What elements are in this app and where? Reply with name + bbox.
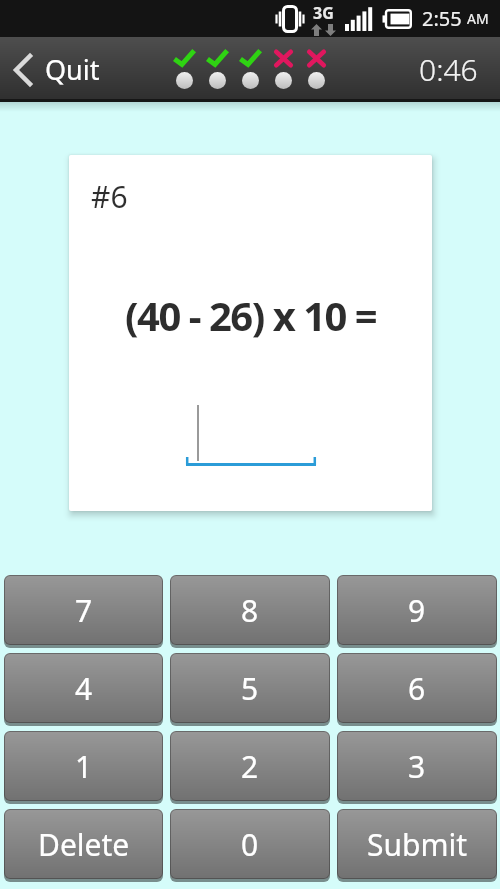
button[interactable]: Delete — [4, 809, 163, 879]
button[interactable]: 8 — [170, 575, 330, 645]
button[interactable]: Submit — [337, 809, 497, 879]
staticText: Quit — [45, 51, 100, 88]
button[interactable]: Quit — [14, 51, 100, 88]
staticText: 2 — [241, 746, 259, 787]
button[interactable]: 2 — [170, 731, 330, 801]
staticText: 9 — [408, 590, 426, 631]
staticText: 4 — [75, 668, 93, 709]
button[interactable]: 7 — [4, 575, 163, 645]
button[interactable]: 6 — [337, 653, 497, 723]
staticText: 0 — [241, 824, 259, 865]
button[interactable]: 9 — [337, 575, 497, 645]
button[interactable]: 1 — [4, 731, 163, 801]
staticText: 6 — [408, 668, 426, 709]
staticText: 8 — [241, 590, 259, 631]
staticText: (40 - 26) x 10 = — [125, 288, 377, 342]
staticText: 1 — [75, 746, 93, 787]
staticText: 2:55 — [422, 5, 462, 32]
staticText: AM — [467, 9, 489, 28]
button[interactable]: 0 — [170, 809, 330, 879]
staticText: #6 — [91, 176, 128, 217]
staticText: 3 — [408, 746, 426, 787]
staticText: 3G — [313, 2, 334, 24]
staticText: Submit — [367, 824, 468, 865]
button[interactable]: 5 — [170, 653, 330, 723]
staticText: 7 — [75, 590, 93, 631]
button[interactable]: 3 — [337, 731, 497, 801]
staticText: Delete — [38, 824, 130, 865]
button[interactable]: 4 — [4, 653, 163, 723]
staticText: 0:46 — [419, 49, 478, 90]
staticText: 5 — [241, 668, 259, 709]
